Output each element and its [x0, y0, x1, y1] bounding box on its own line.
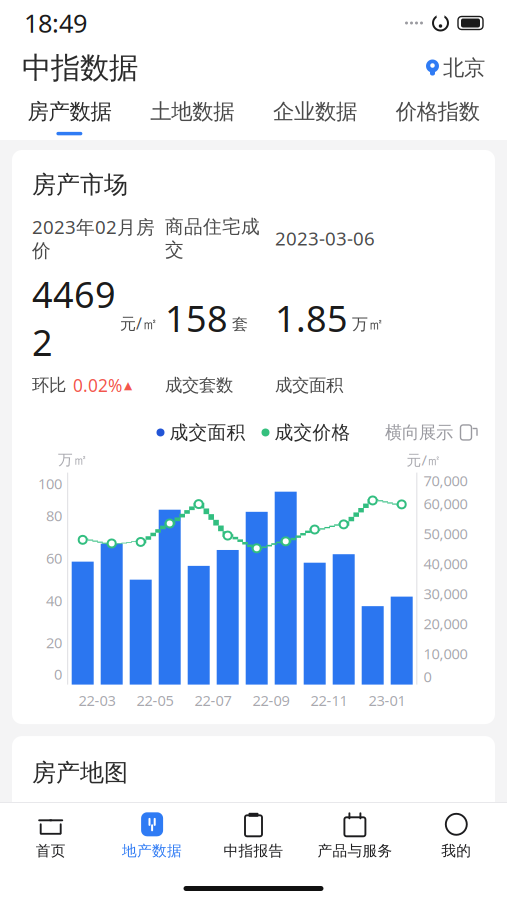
staticText: 产品与服务 [317, 842, 392, 860]
staticText: 横向展示 [385, 422, 453, 443]
staticText: 成交面积 [275, 375, 343, 396]
staticText: 0 [423, 667, 431, 686]
staticText: 23-01 [368, 691, 405, 710]
staticText: 100 [38, 474, 62, 493]
button[interactable]: 北京 [425, 51, 485, 85]
staticText: 中指报告 [223, 842, 283, 860]
button[interactable]: 价格指数 [376, 95, 499, 135]
staticText: 1.85 [275, 294, 348, 342]
staticText: 北京 [443, 55, 485, 81]
staticText: 22-03 [78, 691, 115, 710]
staticText: 成交套数 [165, 375, 233, 396]
staticText: 地产数据 [122, 842, 182, 860]
staticText: 20,000 [423, 614, 467, 633]
staticText: 套 [232, 314, 248, 334]
staticText: 2023-03-06 [275, 226, 375, 251]
staticText: 158 [165, 294, 228, 342]
staticText: 价格指数 [396, 99, 480, 125]
staticText: 60 [46, 548, 62, 568]
staticText: 80 [46, 506, 62, 525]
button[interactable]: 产品与服务 [304, 812, 406, 860]
staticText: 0 [54, 664, 62, 684]
staticText: 22-09 [252, 691, 289, 710]
button[interactable]: 房产数据 [8, 95, 131, 135]
staticText: 企业数据 [273, 99, 357, 125]
staticText: 房产市场 [32, 170, 128, 199]
button[interactable]: 我的 [406, 812, 507, 860]
staticText: 成交面积 [169, 421, 245, 444]
staticText: 70,000 [423, 471, 467, 490]
button[interactable]: 企业数据 [253, 95, 376, 135]
button[interactable]: 首页 [0, 812, 101, 860]
button[interactable]: 土地数据 [131, 95, 254, 135]
staticText: 60,000 [423, 494, 467, 513]
staticText: 房产数据 [27, 99, 111, 125]
staticText: 22-11 [310, 691, 347, 710]
staticText: 22-05 [136, 691, 173, 710]
staticText: 2023年02月房价 [32, 214, 155, 262]
staticText: 土地数据 [150, 99, 234, 125]
staticText: 商品住宅成交 [165, 215, 260, 261]
button[interactable]: 中指报告 [203, 812, 304, 860]
staticText: 10,000 [423, 644, 467, 663]
button[interactable]: 横向展示 [385, 419, 475, 446]
staticText: 0.02% [73, 374, 122, 397]
staticText: 房产地图 [32, 758, 128, 788]
staticText: 40 [46, 591, 62, 610]
staticText: 元/㎡ [406, 450, 441, 470]
staticText: 万㎡ [352, 314, 384, 334]
staticText: ▲ [124, 379, 132, 391]
button[interactable]: 地产数据 [101, 812, 203, 860]
staticText: 30,000 [423, 584, 467, 603]
staticText: 环比 [32, 375, 66, 396]
staticText: 20 [46, 633, 62, 652]
staticText: 首页 [36, 842, 66, 860]
staticText: 40,000 [423, 554, 467, 573]
staticText: 元/㎡ [120, 313, 158, 334]
staticText: 我的 [441, 842, 471, 860]
staticText: 成交价格 [274, 421, 350, 444]
staticText: 万㎡ [58, 451, 88, 469]
staticText: 50,000 [423, 524, 467, 543]
staticText: 18:49 [24, 6, 87, 40]
staticText: 44692 [32, 270, 116, 366]
staticText: 22-07 [194, 691, 231, 710]
staticText: 中指数据 [22, 50, 138, 86]
